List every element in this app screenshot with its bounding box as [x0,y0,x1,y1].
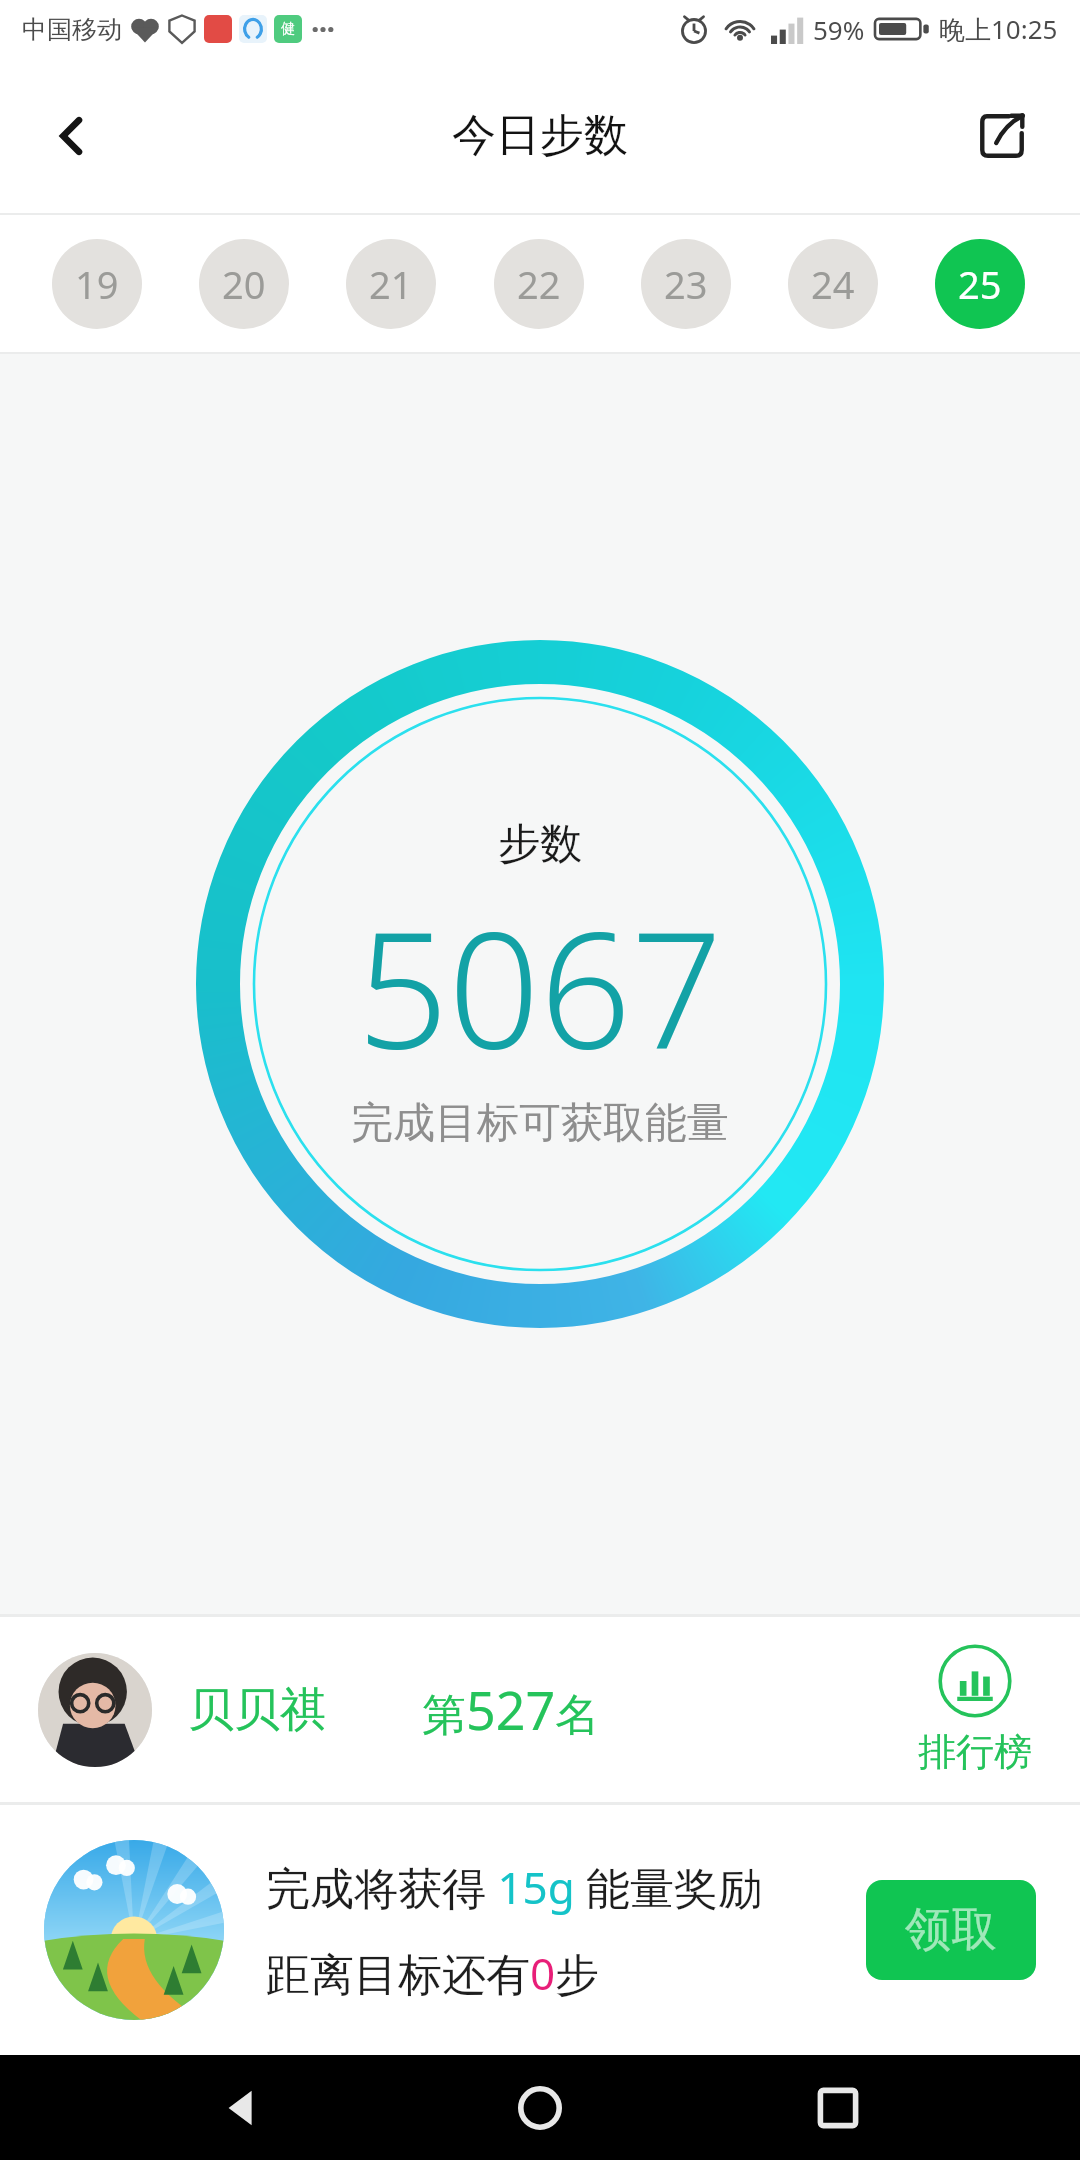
button[interactable]: Home [485,2055,595,2160]
staticText: 完成目标可获取能量 [351,1097,729,1150]
staticText: 贝贝祺 [188,1681,326,1739]
staticText: 第527名 [422,1674,600,1745]
staticText: 今日步数 [452,108,628,163]
staticText: 步数 [498,818,582,871]
button[interactable]: 领取 [866,1880,1036,1980]
staticText: 中国移动 [22,14,122,45]
staticText: 21 [369,258,413,310]
staticText: 20 [222,258,266,310]
staticText: 排行榜 [918,1728,1032,1776]
staticText: 健 [281,20,295,38]
button[interactable]: 21 [346,239,436,329]
button[interactable]: 19 [52,239,142,329]
staticText: 距离目标还有0步 [266,1943,600,2003]
staticText: 领取 [905,1901,997,1959]
button[interactable]: 23 [641,239,731,329]
button[interactable]: Back [30,94,114,178]
button[interactable]: 22 [494,239,584,329]
button[interactable]: 20 [199,239,289,329]
staticText: 19 [75,258,119,310]
button[interactable]: 24 [788,239,878,329]
button[interactable]: Back [188,2055,298,2160]
staticText: 23 [664,258,708,310]
staticText: 晚上10:25 [939,11,1058,47]
staticText: 24 [811,258,855,310]
button[interactable]: 排行榜 [918,1644,1032,1776]
staticText: 5067 [357,877,723,1095]
button[interactable]: 25 [935,239,1025,329]
staticText: 25 [958,258,1002,310]
button[interactable]: 贝贝祺 [0,1617,1080,1802]
button[interactable]: Recents [783,2055,893,2160]
staticText: 59% [813,12,865,47]
staticText: 完成将获得 15g 能量奖励 [266,1857,763,1917]
button[interactable]: Share [960,94,1044,178]
staticText: 22 [517,258,561,310]
